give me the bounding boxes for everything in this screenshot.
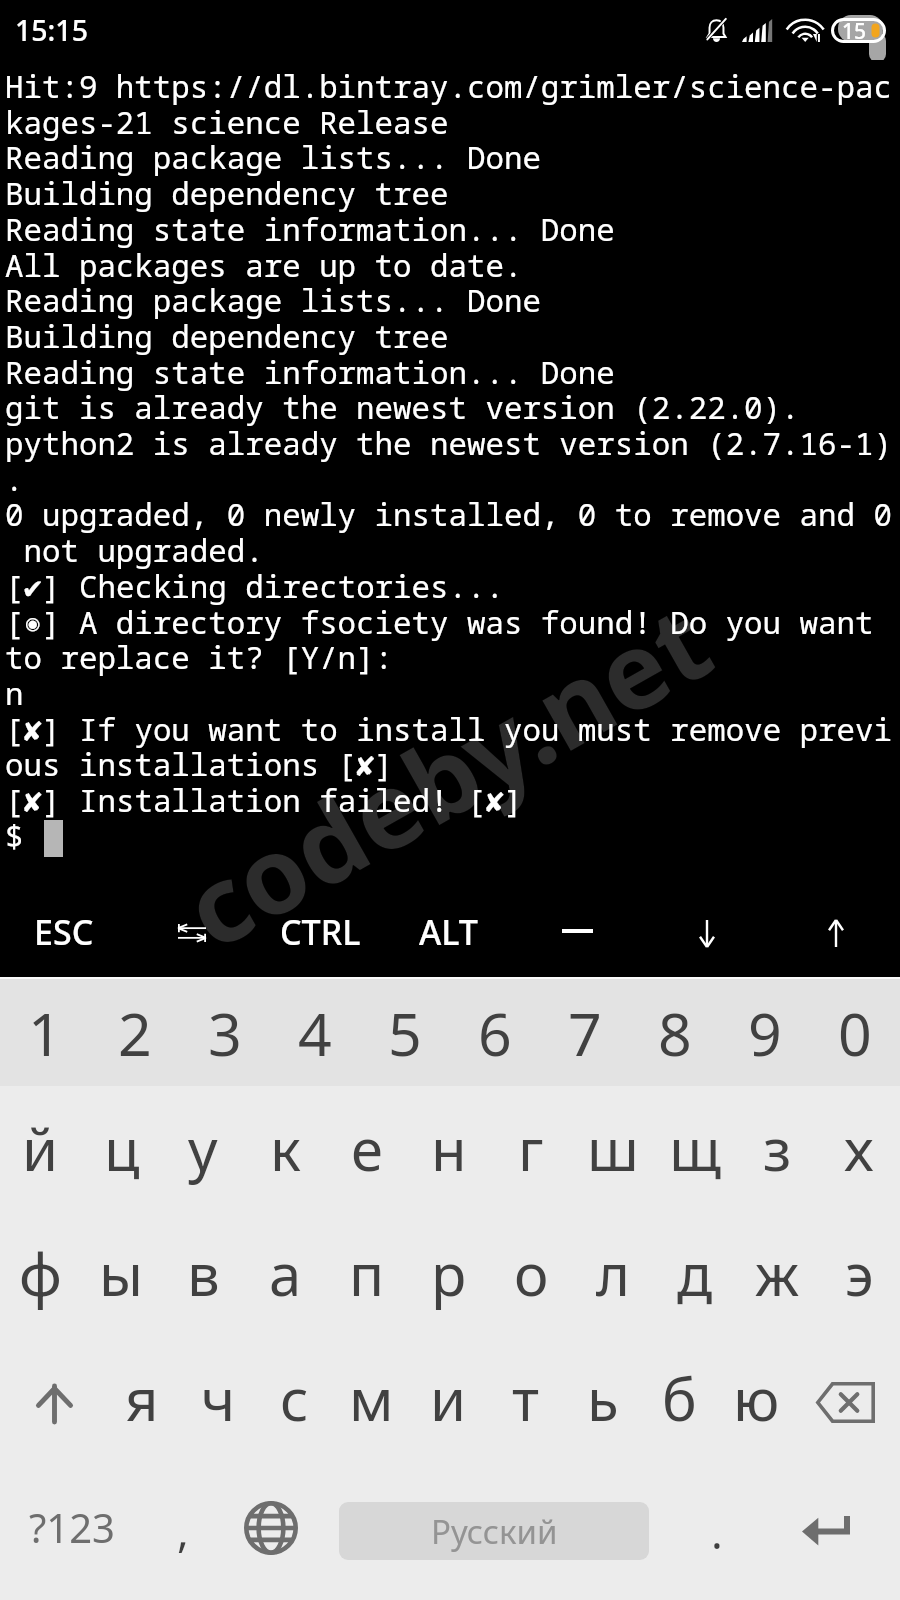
button[interactable]: н — [408, 1086, 490, 1211]
staticText: Русский — [431, 1509, 558, 1554]
staticText: ESC — [34, 909, 94, 955]
button[interactable]: к — [244, 1086, 326, 1211]
staticText: ч — [201, 1359, 236, 1438]
other: Shift — [36, 1386, 73, 1422]
button[interactable]: 1 — [0, 979, 90, 1086]
button[interactable]: ?123 — [0, 1461, 142, 1600]
other: Down — [700, 920, 714, 947]
button[interactable]: с — [256, 1336, 333, 1461]
staticText: Reading state information... Done — [5, 351, 615, 393]
staticText: 15 — [842, 17, 867, 42]
staticText: ь — [587, 1359, 619, 1438]
button[interactable]: CTRL — [256, 897, 384, 977]
staticText: . — [5, 458, 24, 500]
button[interactable]: ESC — [0, 897, 128, 977]
button[interactable]: 6 — [450, 979, 540, 1086]
button[interactable]: ч — [180, 1336, 256, 1461]
button[interactable]: и — [410, 1336, 487, 1461]
button[interactable]: й — [0, 1086, 81, 1211]
staticText: ф — [19, 1234, 62, 1313]
button[interactable]: 5 — [360, 979, 450, 1086]
button[interactable]: у — [162, 1086, 244, 1211]
staticText: е — [351, 1109, 383, 1188]
button[interactable]: э — [818, 1211, 900, 1336]
button[interactable]: д — [654, 1211, 736, 1336]
staticText: 1 — [28, 993, 62, 1073]
staticText: ы — [99, 1234, 144, 1313]
button[interactable]: . — [649, 1461, 777, 1600]
button[interactable]: 0 — [810, 979, 900, 1086]
staticText: 8 — [658, 993, 692, 1073]
button[interactable]: м — [333, 1336, 410, 1461]
button[interactable]: Down — [642, 897, 771, 977]
staticText: ?123 — [29, 1500, 115, 1554]
staticText: т — [512, 1359, 539, 1438]
staticText: Reading state information... Done — [5, 208, 615, 250]
staticText: Reading package lists... Done — [5, 136, 541, 178]
button[interactable]: б — [641, 1336, 718, 1461]
button[interactable]: ф — [0, 1211, 81, 1336]
button[interactable]: Up — [771, 897, 900, 977]
button[interactable]: Русский — [339, 1502, 649, 1560]
staticText: й — [22, 1109, 59, 1188]
button[interactable]: ш — [572, 1086, 654, 1211]
button[interactable]: 8 — [630, 979, 720, 1086]
button[interactable]: щ — [654, 1086, 736, 1211]
staticText: $ — [5, 815, 42, 857]
button[interactable]: Change language — [222, 1461, 339, 1600]
staticText: n — [5, 672, 24, 714]
staticText: 7 — [568, 993, 602, 1073]
staticText: а — [269, 1234, 302, 1313]
button[interactable]: 3 — [180, 979, 270, 1086]
staticText: All packages are up to date. — [5, 244, 523, 286]
button[interactable]: ы — [81, 1211, 162, 1336]
staticText: м — [349, 1359, 394, 1438]
button[interactable]: е — [326, 1086, 408, 1211]
button[interactable]: Enter — [777, 1461, 900, 1600]
staticText: ц — [104, 1109, 140, 1188]
button[interactable]: г — [490, 1086, 572, 1211]
button[interactable]: 2 — [90, 979, 180, 1086]
staticText: ALT — [419, 909, 478, 955]
button[interactable]: а — [244, 1211, 326, 1336]
button[interactable]: , — [142, 1461, 222, 1600]
button[interactable]: ю — [718, 1336, 795, 1461]
button[interactable]: ALT — [384, 897, 513, 977]
button[interactable]: ц — [81, 1086, 162, 1211]
button[interactable]: Backspace — [795, 1336, 900, 1461]
button[interactable]: 4 — [270, 979, 360, 1086]
other: Backspace — [816, 1382, 875, 1423]
button[interactable]: т — [487, 1336, 564, 1461]
staticText: л — [596, 1234, 631, 1313]
staticText: python2 is already the newest version (2… — [5, 422, 892, 464]
staticText: Building dependency tree — [5, 172, 449, 214]
button[interactable]: Tab — [128, 897, 256, 977]
staticText: р — [431, 1234, 467, 1313]
staticText: ш — [587, 1109, 639, 1188]
button[interactable]: о — [490, 1211, 572, 1336]
other: Enter — [802, 1513, 850, 1543]
staticText: н — [431, 1109, 467, 1188]
staticText: х — [844, 1109, 874, 1188]
button[interactable]: л — [572, 1211, 654, 1336]
button[interactable]: х — [818, 1086, 900, 1211]
staticText: щ — [669, 1109, 722, 1188]
staticText: б — [662, 1359, 697, 1438]
button[interactable]: ж — [736, 1211, 818, 1336]
button[interactable]: Minus — [513, 897, 642, 977]
button[interactable]: в — [162, 1211, 244, 1336]
button[interactable]: р — [408, 1211, 490, 1336]
staticText: 0 upgraded, 0 newly installed, 0 to remo… — [5, 493, 892, 535]
button[interactable]: п — [326, 1211, 408, 1336]
button[interactable]: ь — [564, 1336, 641, 1461]
button[interactable]: я — [104, 1336, 180, 1461]
button[interactable]: 7 — [540, 979, 630, 1086]
staticText: [◉] A directory fsociety was found! Do y… — [5, 601, 874, 643]
staticText: ous installations [✘] — [5, 743, 394, 785]
staticText: 9 — [748, 993, 782, 1073]
staticText: п — [349, 1234, 385, 1313]
staticText: kages-21 science Release — [5, 101, 449, 143]
button[interactable]: з — [736, 1086, 818, 1211]
button[interactable]: Shift — [0, 1336, 104, 1461]
button[interactable]: 9 — [720, 979, 810, 1086]
